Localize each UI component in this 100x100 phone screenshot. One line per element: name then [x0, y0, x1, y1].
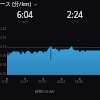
staticText: ペース (分/km) [0, 0, 32, 8]
staticText: 14:37 [20, 80, 29, 84]
staticText: 3:19 [0, 36, 7, 40]
staticText: 29:15 [38, 80, 47, 84]
button[interactable]: ペース (分/km) [0, 0, 94, 8]
staticText: 6:04 [17, 9, 33, 20]
staticText: 4:14 [0, 45, 7, 49]
staticText: 2:24 [67, 9, 83, 20]
staticText: 時間 (分:秒) [35, 89, 55, 94]
staticText: 6:04 [0, 63, 7, 67]
staticText: 6:59 [0, 72, 7, 76]
other: Change metric [33, 2, 38, 7]
staticText: 平均 [22, 20, 28, 24]
staticText: ベスト [70, 20, 80, 24]
staticText: 43:52 [57, 80, 66, 84]
staticText: 5:09 [0, 54, 7, 58]
staticText: 2:24 [0, 27, 7, 31]
button[interactable]: 6:04 [0, 9, 50, 24]
staticText: 0:00 [2, 80, 9, 84]
staticText: 58:30 [75, 80, 84, 84]
button[interactable]: 2:24 [50, 9, 100, 24]
